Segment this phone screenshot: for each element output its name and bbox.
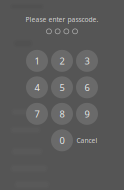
staticText: Please enter passcode. — [25, 15, 98, 24]
button[interactable]: 4 — [26, 76, 48, 98]
staticText: 4 — [34, 81, 39, 94]
staticText: 2 — [59, 55, 64, 67]
staticText: Cancel — [76, 136, 97, 145]
staticText: 6 — [84, 81, 89, 94]
button[interactable]: 5 — [51, 76, 73, 98]
button[interactable]: 0 — [51, 129, 73, 151]
button[interactable]: 9 — [76, 103, 98, 125]
staticText: 7 — [34, 108, 39, 120]
button[interactable]: Cancel — [76, 129, 98, 151]
button[interactable]: 1 — [26, 50, 48, 72]
button[interactable]: 2 — [51, 50, 73, 72]
staticText: 9 — [84, 108, 89, 120]
staticText: 1 — [34, 55, 39, 67]
button[interactable]: 7 — [26, 103, 48, 125]
staticText: 3 — [84, 55, 89, 67]
button[interactable]: 8 — [51, 103, 73, 125]
staticText: 8 — [59, 108, 64, 120]
button[interactable]: 3 — [76, 50, 98, 72]
staticText: 5 — [59, 81, 64, 94]
button[interactable]: 6 — [76, 76, 98, 98]
staticText: 0 — [59, 134, 64, 147]
